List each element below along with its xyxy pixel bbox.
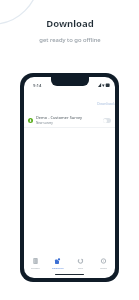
staticText: About: [100, 266, 107, 269]
staticText: get ready to go offline: [39, 36, 101, 44]
button[interactable]: About: [92, 258, 115, 269]
button[interactable]: Surveys: [24, 258, 46, 269]
staticText: New survey: [36, 121, 53, 125]
staticText: Download: [52, 266, 64, 269]
staticText: Download: [46, 17, 94, 30]
staticText: Sync: [78, 266, 84, 269]
button[interactable]: Demo - Customer Survey: [24, 112, 115, 128]
staticText: Demo - Customer Survey: [36, 115, 83, 120]
button[interactable]: Sync: [69, 258, 92, 269]
button[interactable]: Download all: [96, 99, 115, 108]
staticText: Surveys: [31, 266, 40, 269]
button[interactable]: Download toggle: [103, 118, 111, 123]
staticText: 9:14: [33, 83, 42, 89]
button[interactable]: Download: [46, 258, 69, 269]
staticText: Download all: [97, 101, 115, 106]
